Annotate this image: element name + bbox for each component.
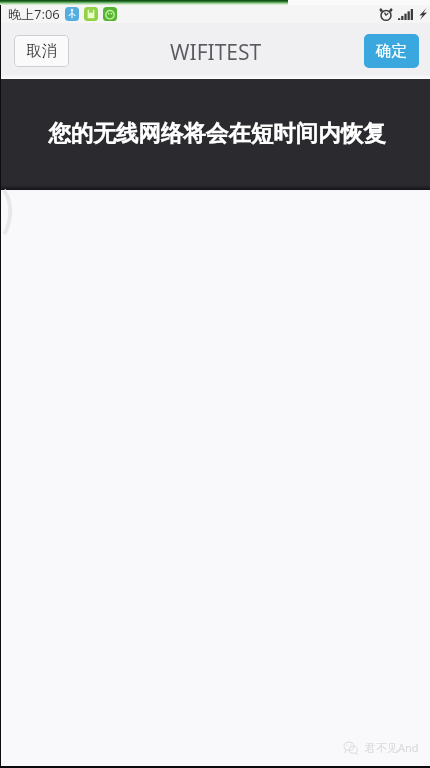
other: Alarm [379,7,393,21]
staticText: 确定 [376,41,407,61]
other: Signal [398,9,413,20]
staticText: 取消 [26,41,57,61]
staticText: 君不见And [365,740,419,755]
other: Charging [419,8,427,20]
button[interactable]: 取消 [14,35,69,67]
staticText: WIFITEST [170,38,262,67]
button[interactable]: 确定 [364,34,419,68]
staticText: 您的无线网络将会在短时间内恢复 [48,119,386,147]
staticText: 晚上7:06 [8,5,60,23]
